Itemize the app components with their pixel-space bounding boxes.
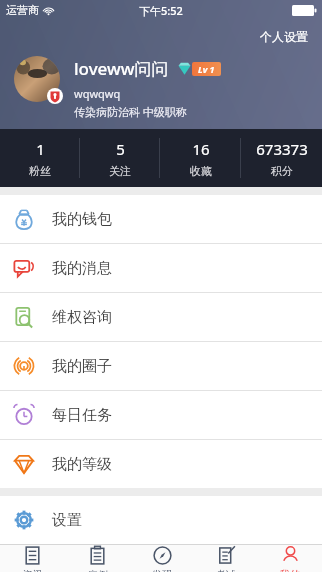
button[interactable]: 资讯 (0, 545, 65, 572)
staticText: 个人设置 (260, 29, 308, 44)
staticText: 下午5:52 (139, 3, 183, 18)
staticText: 关注 (109, 164, 131, 178)
staticText: 资讯 (23, 568, 43, 572)
staticText: 我的 (280, 568, 300, 572)
staticText: 病例 (88, 568, 108, 572)
staticText: 16 (192, 139, 210, 159)
staticText: 粉丝 (29, 164, 51, 178)
staticText: 收藏 (190, 164, 212, 178)
button[interactable]: 673373 (241, 129, 322, 187)
staticText: 考试 (216, 568, 236, 572)
button[interactable]: 我的等级 (0, 440, 322, 488)
button[interactable]: 病例 (65, 545, 130, 572)
button[interactable]: 设置 (0, 496, 322, 544)
staticText: 我的钱包 (52, 210, 112, 229)
button[interactable]: 每日任务 (0, 391, 322, 440)
staticText: Lv 1 (198, 63, 215, 75)
button[interactable]: 16 (160, 129, 241, 187)
staticText: 我的等级 (52, 455, 112, 474)
staticText: 我的圈子 (52, 357, 112, 376)
staticText: wqwqwq (74, 86, 121, 101)
staticText: 我的消息 (52, 259, 112, 278)
button[interactable]: loveww问问 (14, 56, 221, 119)
staticText: 发现 (152, 568, 172, 572)
staticText: 1 (36, 139, 45, 159)
staticText: 每日任务 (52, 406, 112, 425)
staticText: 673373 (256, 139, 308, 159)
staticText: 维权咨询 (52, 308, 112, 327)
button[interactable]: 维权咨询 (0, 293, 322, 342)
button[interactable]: 个人设置 (256, 26, 312, 47)
staticText: 运营商 (6, 3, 39, 17)
button[interactable]: 发现 (130, 545, 194, 572)
button[interactable]: 我的圈子 (0, 342, 322, 391)
button[interactable]: 5 (80, 129, 160, 187)
staticText: 5 (116, 139, 125, 159)
button[interactable]: 我的 (258, 545, 322, 572)
button[interactable]: 1 (0, 129, 80, 187)
staticText: loveww问问 (74, 57, 169, 80)
button[interactable]: 考试 (194, 545, 258, 572)
staticText: 积分 (271, 164, 293, 178)
staticText: 传染病防治科 中级职称 (74, 104, 187, 119)
staticText: 设置 (52, 511, 82, 530)
button[interactable]: 我的钱包 (0, 195, 322, 244)
button[interactable]: 我的消息 (0, 244, 322, 293)
